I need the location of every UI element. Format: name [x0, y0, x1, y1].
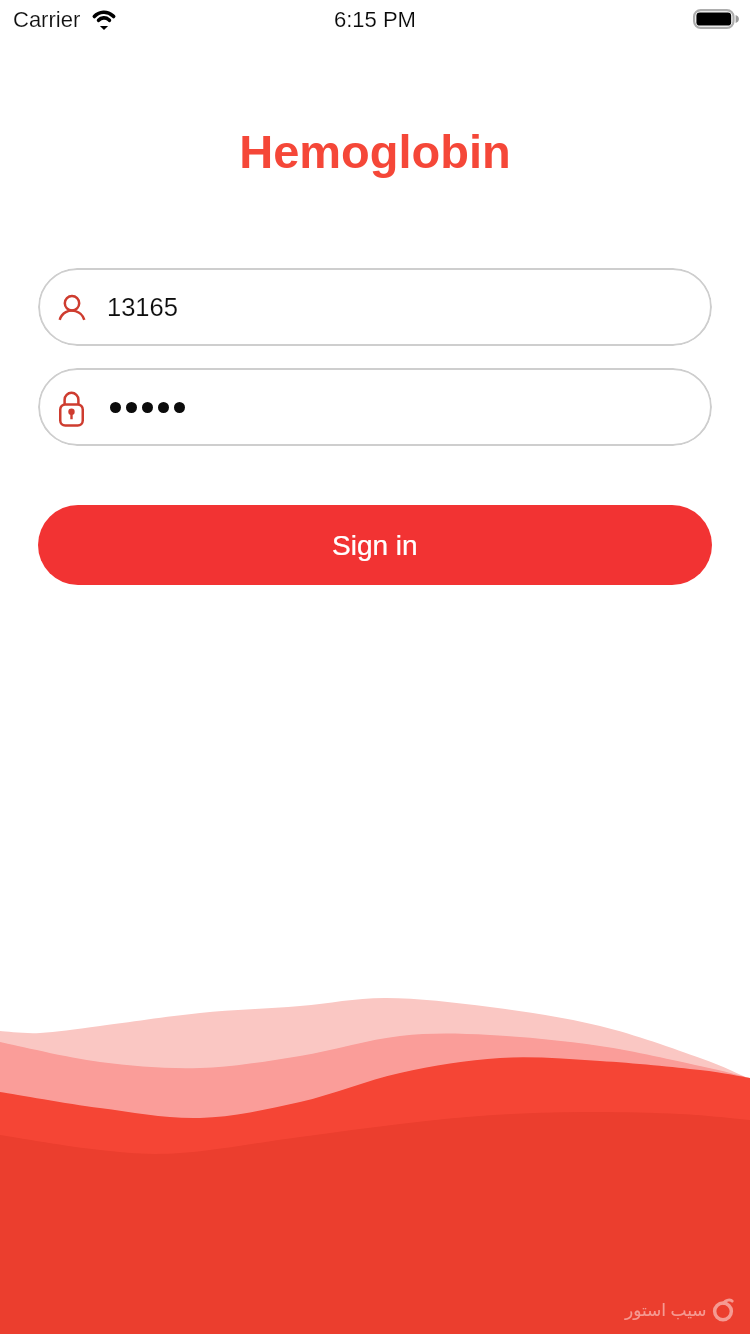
staticText: Carrier	[13, 7, 81, 32]
staticText: سیب استور	[625, 1298, 707, 1321]
staticText: 6:15 PM	[334, 7, 416, 32]
staticText: Sign in	[332, 530, 418, 561]
button[interactable]: Password	[38, 368, 712, 446]
button[interactable]: Sign in	[38, 505, 712, 585]
staticText: 13165	[107, 293, 178, 321]
staticText: Hemoglobin	[0, 125, 750, 178]
button[interactable]: Username	[38, 268, 712, 346]
